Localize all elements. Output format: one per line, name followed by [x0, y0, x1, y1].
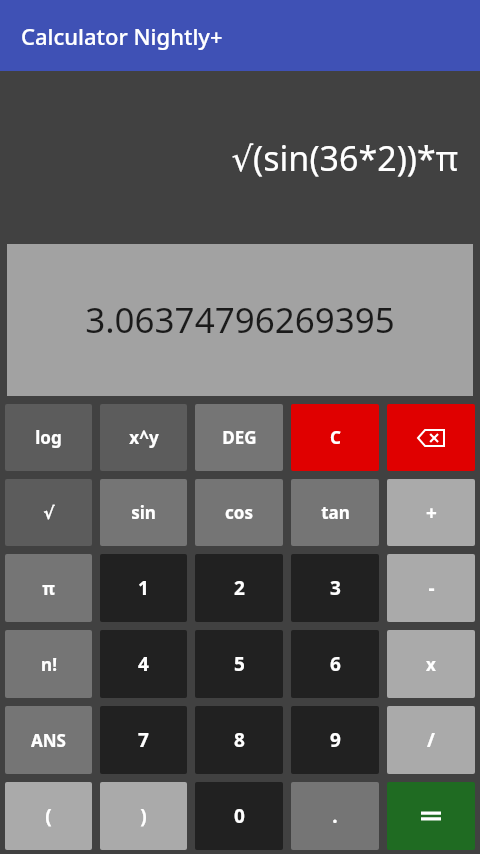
- button[interactable]: 5: [195, 630, 283, 698]
- staticText: Calculator Nightly+: [21, 21, 223, 51]
- staticText: log: [35, 426, 62, 449]
- button[interactable]: DEG: [195, 404, 283, 471]
- button[interactable]: C: [291, 404, 379, 471]
- button[interactable]: cos: [195, 479, 283, 546]
- staticText: .: [332, 803, 338, 829]
- staticText: 2: [234, 575, 245, 601]
- staticText: 3.06374796269395: [17, 296, 463, 344]
- staticText: sin: [131, 501, 156, 524]
- staticText: +: [426, 500, 437, 526]
- button[interactable]: 7: [100, 706, 187, 774]
- button[interactable]: ANS: [5, 706, 92, 774]
- staticText: √(sin(36*2))*π: [0, 135, 458, 181]
- staticText: 0: [234, 803, 245, 829]
- staticText: 1: [138, 575, 149, 601]
- button[interactable]: ): [100, 782, 187, 850]
- staticText: (: [45, 803, 52, 829]
- staticText: DEG: [222, 426, 257, 449]
- staticText: 9: [330, 727, 341, 753]
- staticText: C: [330, 426, 341, 449]
- staticText: cos: [225, 501, 253, 524]
- staticText: /: [427, 727, 435, 753]
- button[interactable]: 2: [195, 554, 283, 622]
- button[interactable]: 6: [291, 630, 379, 698]
- staticText: 6: [330, 651, 341, 677]
- button[interactable]: n!: [5, 630, 92, 698]
- button[interactable]: (: [5, 782, 92, 850]
- button[interactable]: 3: [291, 554, 379, 622]
- button[interactable]: 1: [100, 554, 187, 622]
- button[interactable]: log: [5, 404, 92, 471]
- button[interactable]: Backspace: [387, 404, 475, 471]
- staticText: 3: [330, 575, 341, 601]
- staticText: x: [426, 653, 436, 676]
- staticText: 7: [138, 727, 149, 753]
- button[interactable]: .: [291, 782, 379, 850]
- button[interactable]: 3.06374796269395: [7, 244, 473, 396]
- staticText: π: [42, 577, 55, 600]
- button[interactable]: 8: [195, 706, 283, 774]
- button[interactable]: x^y: [100, 404, 187, 471]
- button[interactable]: -: [387, 554, 475, 622]
- button[interactable]: 0: [195, 782, 283, 850]
- button[interactable]: √: [5, 479, 92, 546]
- button[interactable]: tan: [291, 479, 379, 546]
- staticText: 8: [234, 727, 245, 753]
- button[interactable]: 9: [291, 706, 379, 774]
- staticText: ANS: [31, 729, 66, 752]
- button[interactable]: Equals: [387, 782, 475, 850]
- button[interactable]: 4: [100, 630, 187, 698]
- button[interactable]: /: [387, 706, 475, 774]
- staticText: x^y: [129, 426, 159, 449]
- button[interactable]: x: [387, 630, 475, 698]
- staticText: √: [43, 503, 55, 523]
- staticText: n!: [41, 653, 57, 676]
- button[interactable]: sin: [100, 479, 187, 546]
- button[interactable]: +: [387, 479, 475, 546]
- staticText: ): [140, 803, 147, 829]
- staticText: 5: [234, 651, 245, 677]
- staticText: tan: [321, 501, 350, 524]
- staticText: 4: [138, 651, 149, 677]
- staticText: -: [428, 575, 435, 601]
- button[interactable]: π: [5, 554, 92, 622]
